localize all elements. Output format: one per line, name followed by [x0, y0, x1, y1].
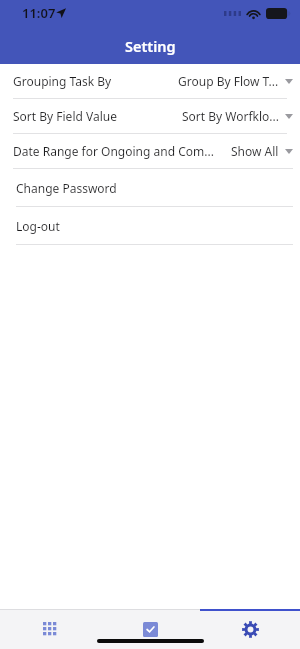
- staticText: Sort By Worfklo...: [182, 108, 279, 124]
- staticText: Sort By Field Value: [13, 108, 117, 124]
- staticText: 11:07: [22, 4, 56, 22]
- staticText: Group By Flow T...: [178, 73, 279, 89]
- button[interactable]: Apps: [0, 609, 100, 649]
- staticText: Grouping Task By: [13, 73, 112, 89]
- button[interactable]: Log-out: [0, 207, 300, 244]
- button[interactable]: Settings: [200, 609, 300, 649]
- button[interactable]: Change Password: [0, 169, 300, 206]
- button[interactable]: Grouping Task By: [0, 64, 300, 98]
- button[interactable]: Date Range for Ongoing and Com...: [0, 134, 300, 168]
- staticText: Log-out: [16, 218, 60, 234]
- button[interactable]: Sort By Field Value: [0, 99, 300, 133]
- staticText: Date Range for Ongoing and Com...: [13, 143, 214, 159]
- staticText: Setting: [125, 36, 176, 56]
- button[interactable]: Tasks: [100, 609, 200, 649]
- staticText: Show All: [231, 143, 279, 159]
- staticText: Change Password: [16, 180, 117, 196]
